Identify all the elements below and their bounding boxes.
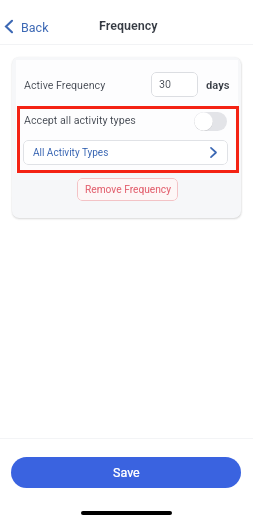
- staticText: days: [206, 79, 230, 92]
- button[interactable]: Save: [11, 457, 241, 488]
- staticText: Back: [21, 20, 49, 35]
- staticText: Remove Frequency: [85, 184, 171, 196]
- staticText: Save: [113, 465, 140, 480]
- button[interactable]: Back: [1, 16, 51, 37]
- button[interactable]: 30: [151, 72, 198, 97]
- staticText: 30: [159, 78, 172, 91]
- staticText: Accept all activity types: [24, 114, 136, 127]
- button[interactable]: Remove Frequency: [77, 178, 178, 201]
- staticText: Active Frequency: [24, 79, 106, 92]
- staticText: All Activity Types: [33, 147, 109, 159]
- button[interactable]: All Activity Types: [23, 140, 228, 165]
- button[interactable]: Accept all activity types toggle: [194, 112, 227, 131]
- staticText: Frequency: [99, 18, 158, 33]
